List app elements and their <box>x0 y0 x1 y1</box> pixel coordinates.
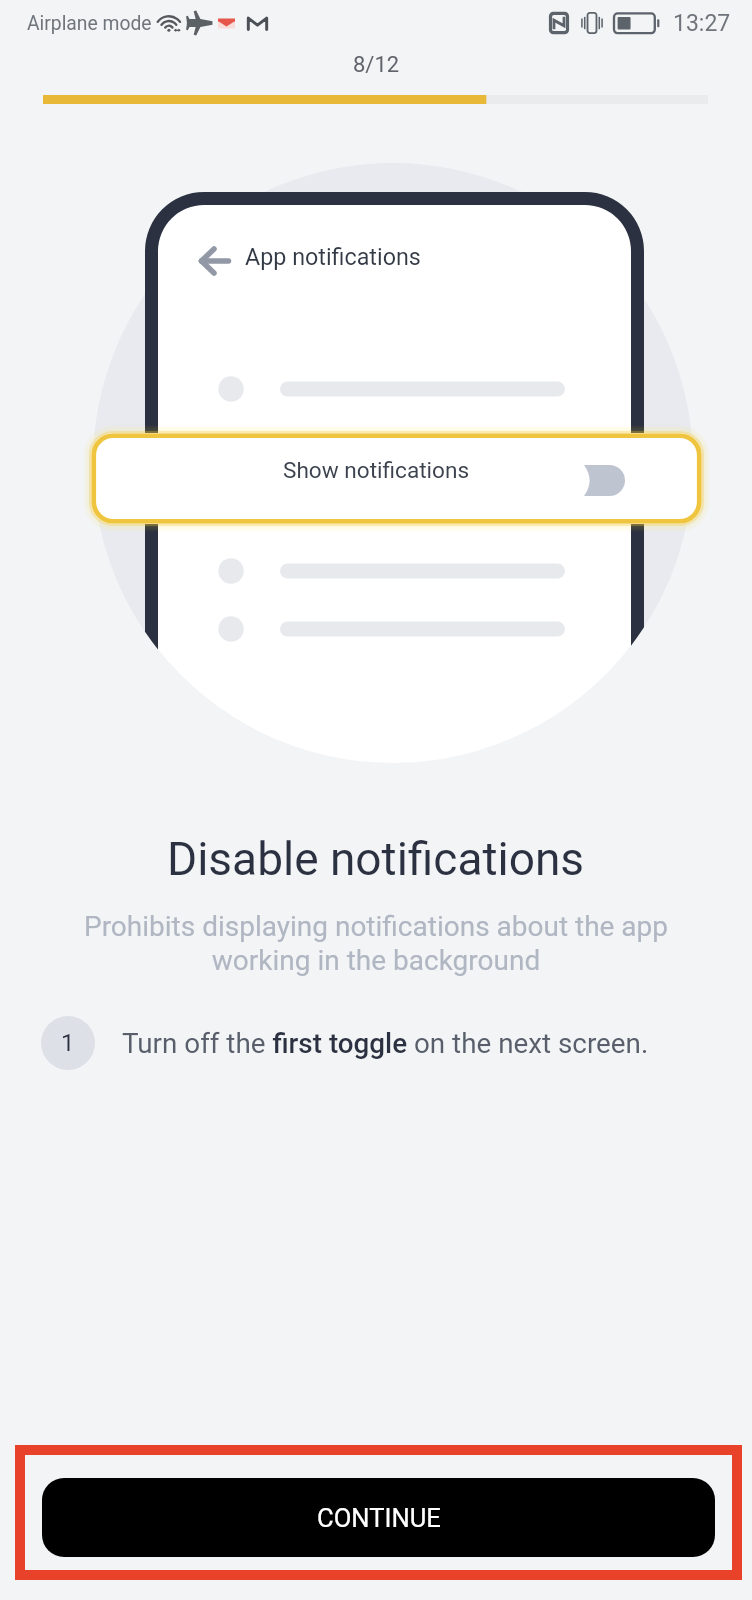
button[interactable]: CONTINUE <box>42 1478 715 1557</box>
staticText: Turn off the first toggle on the next sc… <box>122 1027 649 1060</box>
staticText: 1 <box>61 1029 75 1057</box>
staticText: Prohibits displaying notifications about… <box>66 910 686 977</box>
staticText: 13:27 <box>673 10 731 37</box>
staticText: Show notifications <box>283 457 470 483</box>
staticText: CONTINUE <box>317 1503 441 1533</box>
staticText: Airplane mode <box>27 12 152 35</box>
staticText: App notifications <box>245 243 421 270</box>
staticText: Disable notifications <box>167 832 585 886</box>
staticText: 8/12 <box>353 52 400 78</box>
